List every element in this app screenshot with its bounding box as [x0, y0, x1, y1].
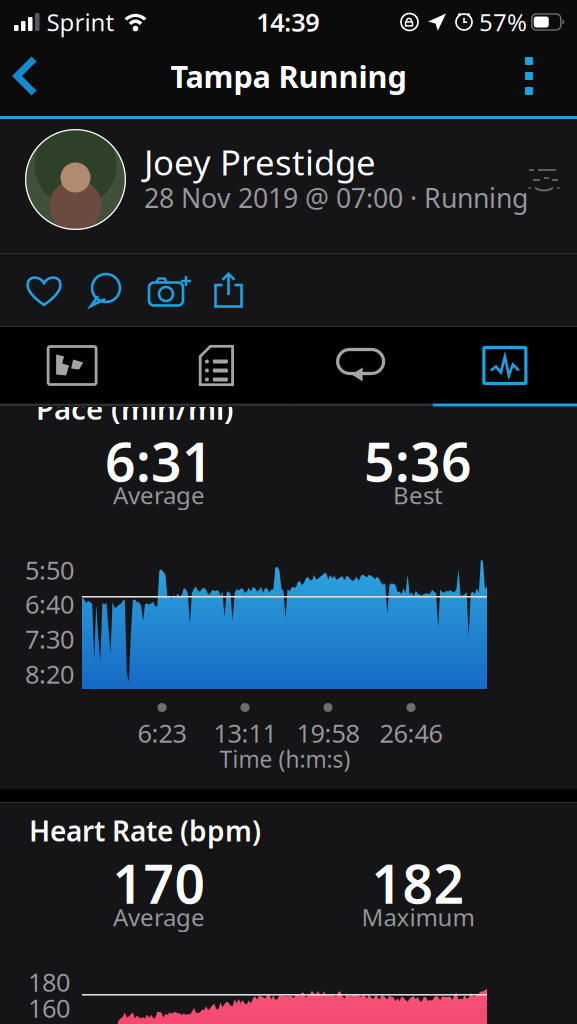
staticText: Sprint	[46, 6, 114, 38]
staticText: 170	[112, 848, 205, 918]
staticText: Joey Prestidge	[144, 139, 376, 185]
staticText: 8:20	[25, 657, 74, 691]
staticText: Average	[113, 901, 205, 933]
staticText: Average	[113, 479, 205, 511]
button[interactable]: Splits	[144, 327, 288, 403]
button[interactable]: Share	[214, 254, 243, 326]
staticText: 26:46	[379, 716, 442, 750]
staticText: Heart Rate (bpm)	[29, 812, 261, 849]
staticText: 160	[28, 991, 70, 1024]
button[interactable]: Like	[0, 254, 88, 326]
staticText: 13:11	[213, 716, 276, 750]
staticText: Tampa Running	[170, 56, 406, 96]
staticText: Best	[393, 479, 443, 511]
staticText: 6:23	[137, 716, 186, 750]
staticText: 14:39	[256, 5, 319, 39]
staticText: 6:31	[105, 426, 213, 496]
staticText: 180	[28, 965, 70, 999]
staticText: 5:50	[25, 553, 74, 587]
staticText: Time (h:m:s)	[219, 744, 350, 774]
button[interactable]: Back	[0, 46, 60, 114]
staticText: 57%	[479, 6, 527, 38]
staticText: 19:58	[296, 716, 359, 750]
staticText: 182	[371, 848, 464, 918]
button[interactable]: Add photo	[148, 254, 214, 326]
button[interactable]: Charts	[433, 327, 577, 403]
button[interactable]: More options	[498, 46, 577, 114]
button[interactable]: Comment	[88, 254, 148, 326]
button[interactable]: Laps	[288, 327, 433, 403]
staticText: 5:36	[364, 426, 472, 496]
staticText: 6:40	[25, 587, 74, 621]
staticText: 28 Nov 2019 @ 07:00 · Running	[144, 180, 528, 215]
button[interactable]: Map	[0, 327, 144, 403]
staticText: 7:30	[25, 622, 74, 656]
staticText: Pace (min/mi)	[36, 389, 234, 428]
staticText: Maximum	[361, 901, 474, 933]
